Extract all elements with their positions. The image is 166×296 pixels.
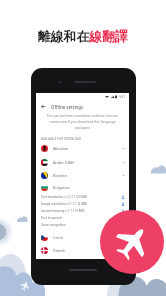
staticText: AVAILABLE FOR DOWNLOAD [41, 137, 82, 141]
staticText: Czech [53, 235, 64, 240]
staticText: Image translation v.1.1.1 (2 MB) [41, 202, 87, 206]
staticText: You can perform translation without inte… [36, 113, 129, 130]
staticText: Text translation v.1.2.1 (120 MB) [41, 195, 88, 199]
staticText: Voice recognition [41, 223, 67, 227]
button[interactable]: Airplane mode [100, 210, 164, 274]
staticText: Lexical meaning v.1.1.1 (0 MB) [41, 209, 85, 213]
staticText: 離線和在線翻譯 [38, 29, 128, 45]
button[interactable]: Text translation v.1.2.1 (120 MB) [41, 193, 125, 200]
button[interactable]: Czech [36, 231, 129, 244]
staticText: Offline settings [51, 104, 84, 110]
staticText: 9:41 [119, 95, 125, 99]
button[interactable]: Back [40, 100, 129, 113]
button[interactable]: Danish [36, 244, 129, 257]
staticText: Arabic (UAE) [53, 160, 75, 165]
staticText: Danish [53, 248, 66, 253]
button[interactable]: Lexical meaning v.1.1.1 (0 MB) [41, 207, 125, 214]
staticText: Bosnian [53, 173, 67, 178]
button[interactable]: Image translation v.1.1.1 (2 MB) [41, 200, 125, 207]
staticText: Text to speech [41, 216, 62, 220]
staticText: Albanian [53, 146, 69, 151]
button[interactable]: Text to speech [41, 214, 125, 221]
button[interactable]: Voice recognition [41, 221, 125, 228]
button[interactable]: Bulgarian [36, 182, 129, 193]
button[interactable]: Albanian [36, 142, 129, 155]
button[interactable]: Bosnian [36, 169, 129, 182]
button[interactable]: Back [40, 103, 47, 110]
button[interactable]: Arabic (UAE) [36, 156, 129, 169]
staticText: Bulgarian [53, 185, 70, 190]
